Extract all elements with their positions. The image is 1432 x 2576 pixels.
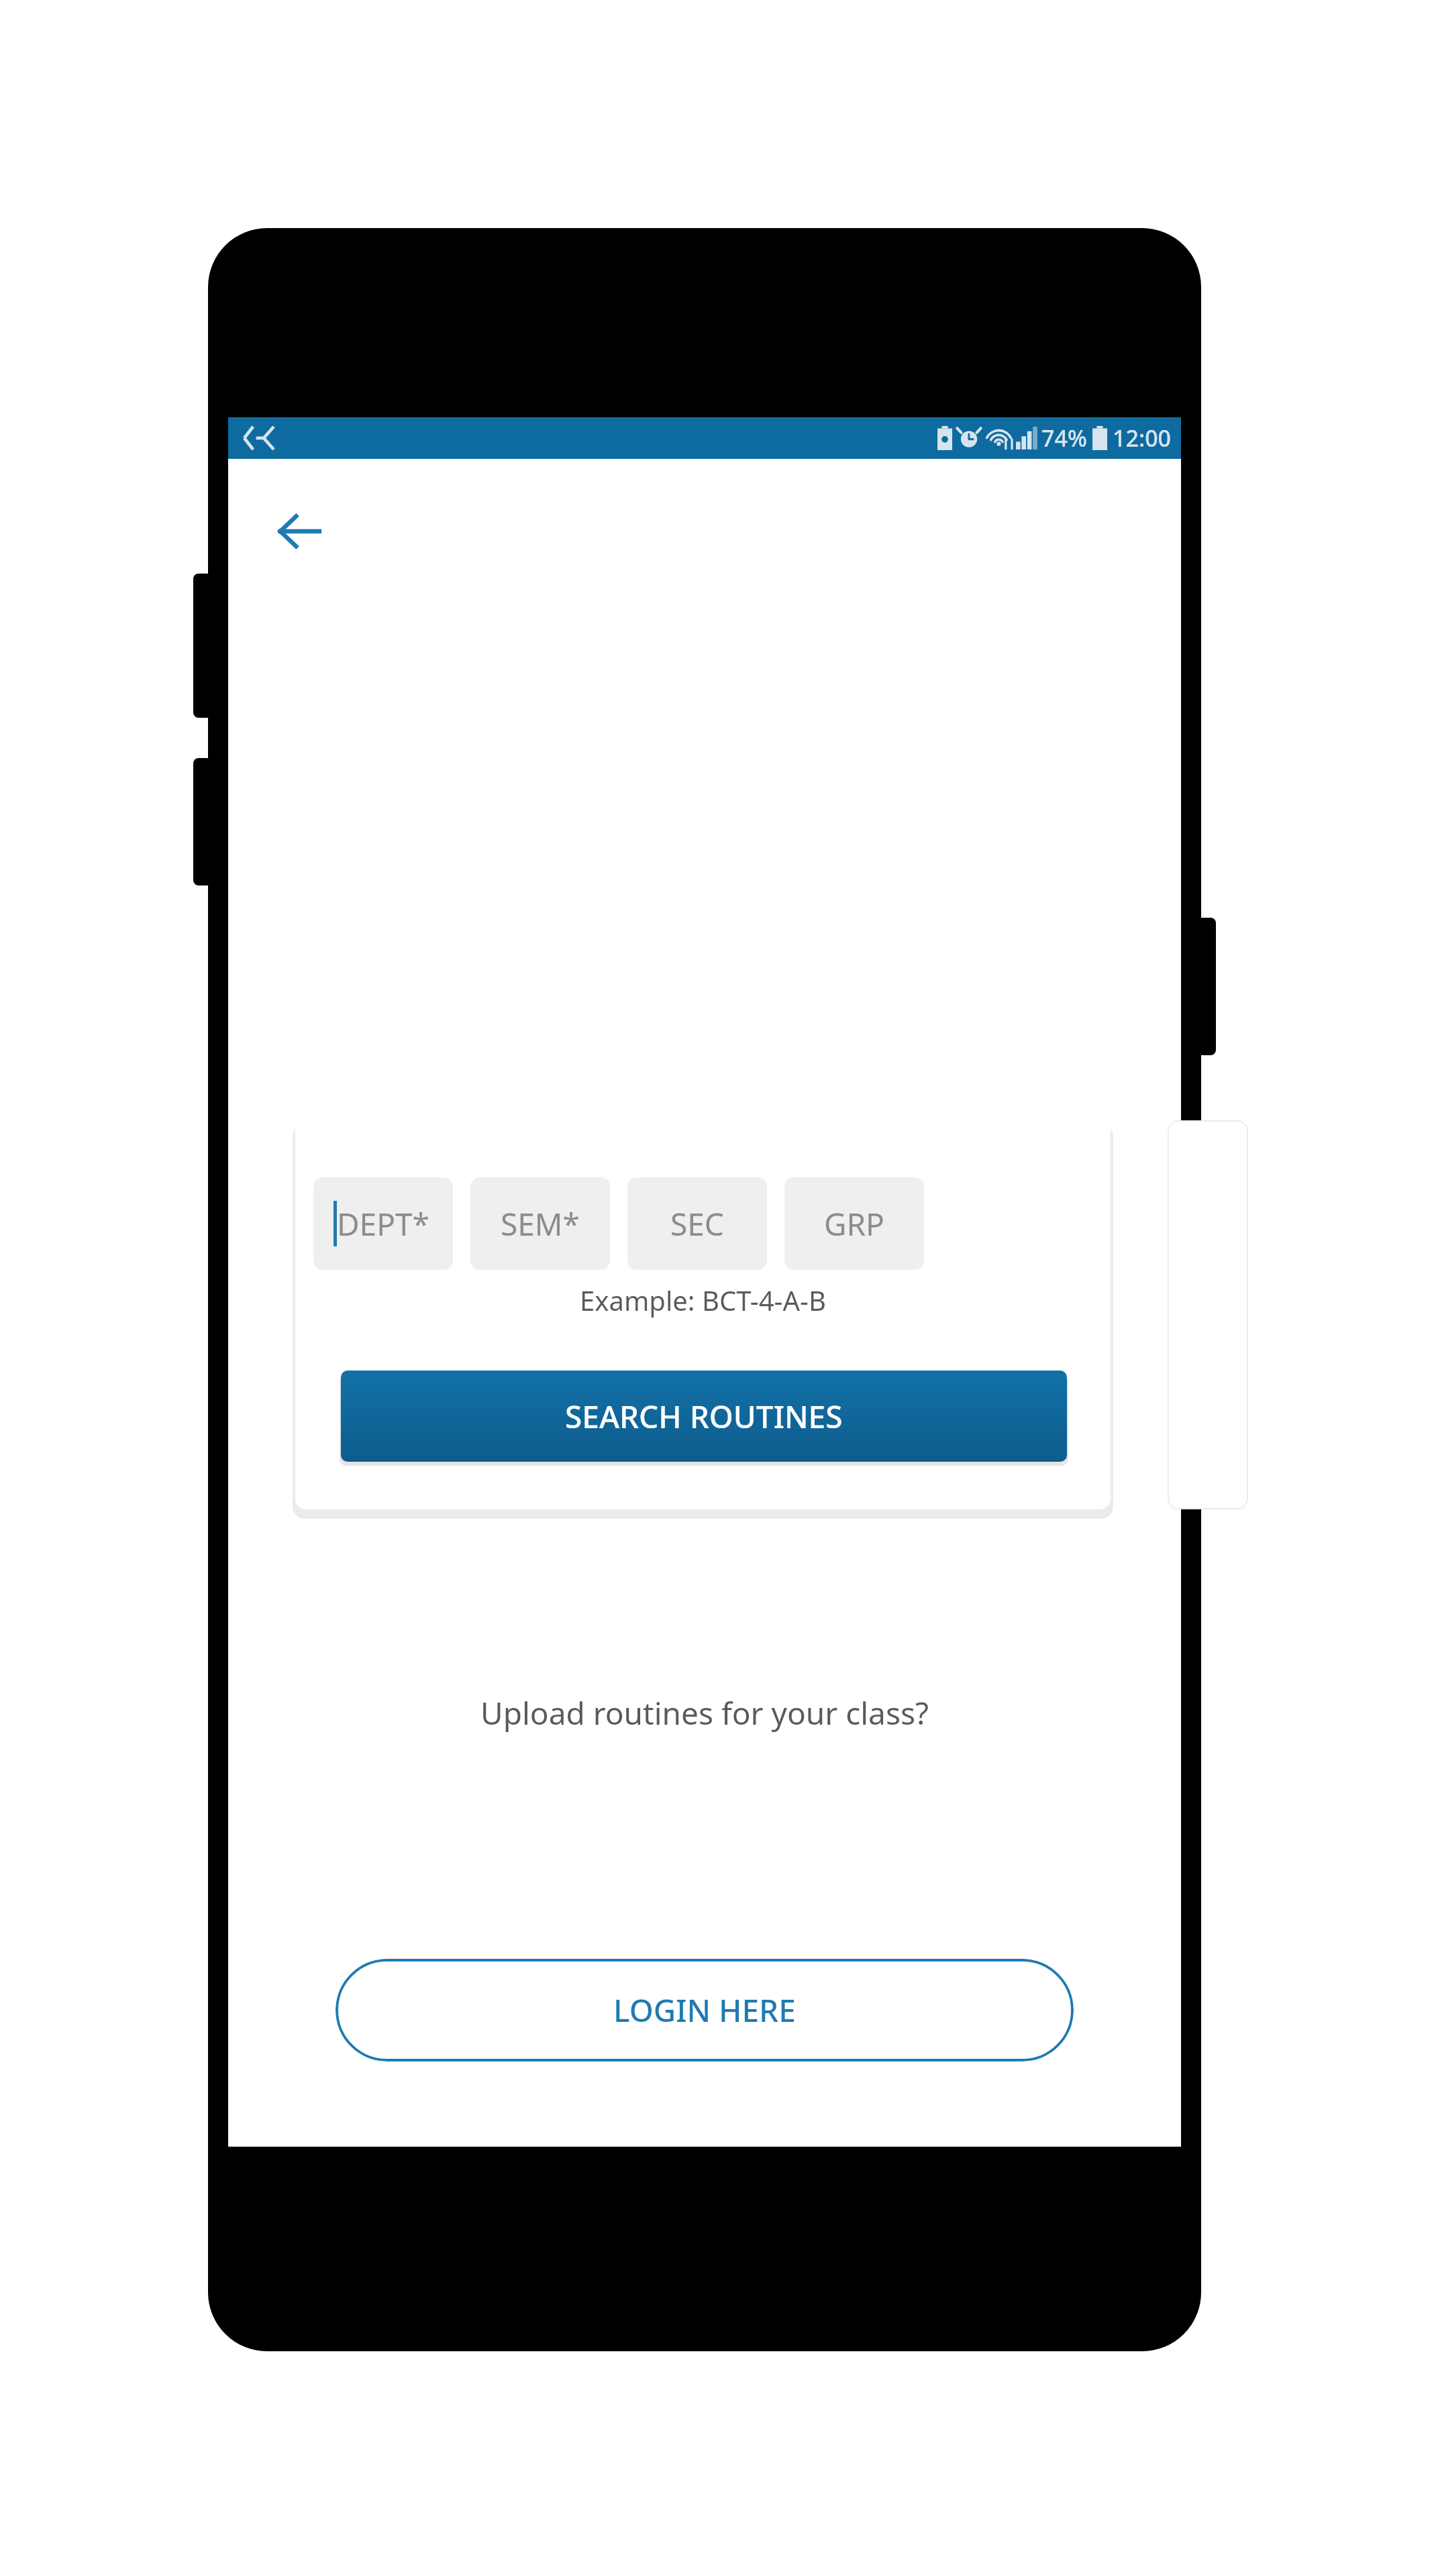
staticText: SEM* [501,1203,580,1245]
button[interactable]: SEM* [470,1177,610,1270]
staticText: LOGIN HERE [613,1989,796,2031]
button[interactable]: DEPT* [313,1177,453,1270]
staticText: Example: BCT-4-A-B [295,1282,1111,1318]
staticText: GRP [824,1203,884,1245]
staticText: Upload routines for your class? [228,1692,1181,1734]
staticText: 12:00 [1113,423,1172,453]
staticText: DEPT* [337,1203,429,1245]
button[interactable]: GRP [784,1177,924,1270]
button[interactable]: LOGIN HERE [336,1959,1074,2061]
button[interactable]: SEARCH ROUTINES [341,1371,1067,1462]
staticText: 74% [1041,423,1087,453]
button[interactable]: SEC [627,1177,767,1270]
staticText: SEARCH ROUTINES [565,1395,843,1438]
staticText: SEC [670,1203,724,1245]
button[interactable]: Back [262,494,336,568]
